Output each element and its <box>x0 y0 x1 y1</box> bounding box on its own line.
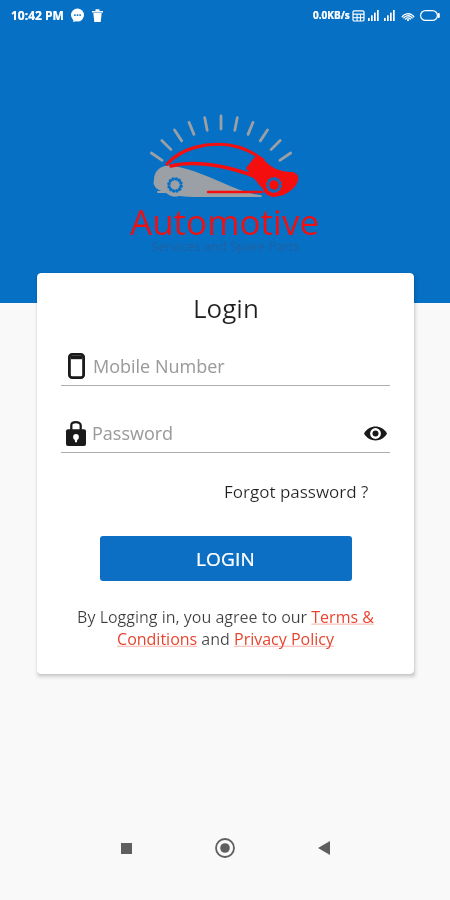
staticText: Mobile Number <box>93 354 225 379</box>
staticText: Automotive <box>130 198 320 246</box>
button[interactable]: Recents <box>108 830 144 866</box>
button[interactable]: By Logging in, you agree to our Terms & … <box>61 606 390 650</box>
staticText: Forgot password ? <box>224 480 369 503</box>
staticText: Login <box>193 290 259 325</box>
button[interactable]: Show password <box>360 419 390 447</box>
staticText: 0.0KB/s <box>313 8 350 22</box>
staticText: Password <box>92 421 174 446</box>
button[interactable]: LOGIN <box>100 536 352 581</box>
button[interactable]: Back <box>306 830 342 866</box>
staticText: Services and Spare Parts <box>151 237 300 255</box>
staticText: By Logging in, you agree to our Terms & … <box>61 606 390 650</box>
button[interactable]: Forgot password ? <box>222 478 371 505</box>
button[interactable]: Home <box>207 830 243 866</box>
staticText: LOGIN <box>196 546 256 572</box>
staticText: 10:42 PM <box>11 7 64 23</box>
